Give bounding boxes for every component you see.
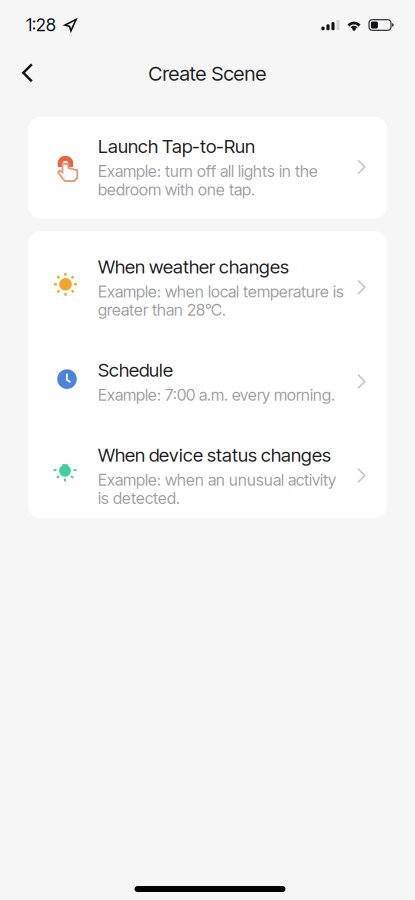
staticText: Example: when local temperature is: [98, 282, 344, 301]
button[interactable]: Launch Tap-to-Run: [28, 117, 387, 218]
staticText: bedroom with one tap.: [98, 180, 255, 199]
staticText: greater than 28°C.: [98, 300, 226, 320]
staticText: Launch Tap-to-Run: [98, 135, 255, 158]
staticText: Example: when an unusual activity: [98, 470, 336, 489]
staticText: Create Scene: [148, 61, 266, 86]
staticText: Example: 7:00 a.m. every morning.: [98, 385, 335, 405]
staticText: When device status changes: [98, 444, 331, 466]
button[interactable]: When weather changes: [28, 231, 387, 340]
button[interactable]: When device status changes: [28, 425, 387, 518]
button[interactable]: Schedule: [28, 340, 387, 424]
staticText: Example: turn off all lights in the: [98, 162, 318, 181]
staticText: is detected.: [98, 488, 180, 508]
button[interactable]: Back: [0, 50, 48, 94]
staticText: When weather changes: [98, 255, 289, 278]
staticText: Schedule: [98, 359, 173, 381]
staticText: 1:28: [26, 14, 56, 35]
